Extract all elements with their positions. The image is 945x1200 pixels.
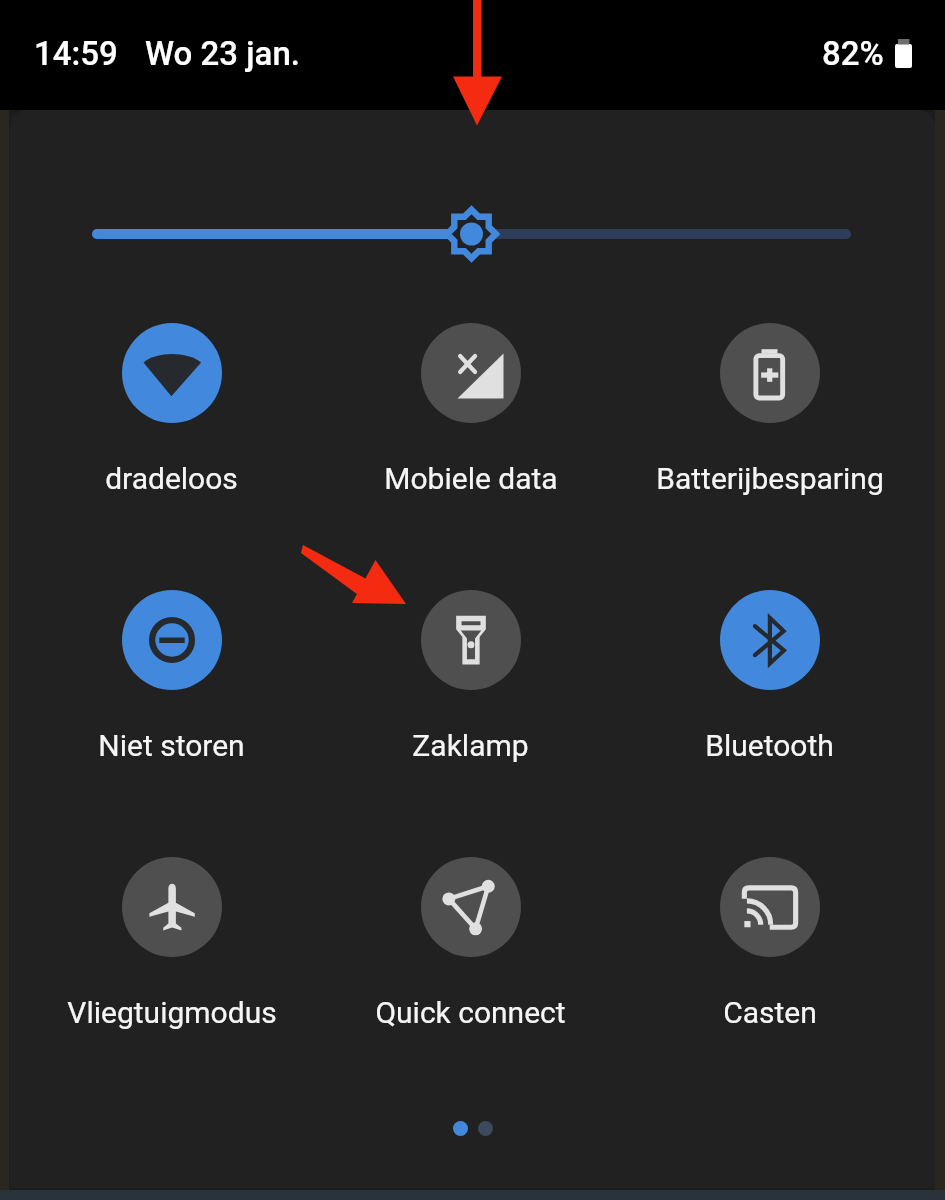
button[interactable]: Cast — [620, 857, 919, 1124]
button[interactable]: Mobile data — [321, 323, 620, 590]
staticText: Vliegtuigmodus — [67, 995, 277, 1030]
button[interactable]: Airplane mode — [22, 857, 321, 1124]
other: Cast — [720, 857, 820, 957]
other: Battery saver — [720, 323, 820, 423]
staticText: Bluetooth — [705, 728, 834, 763]
staticText: Niet storen — [98, 728, 245, 763]
button[interactable]: Battery saver — [620, 323, 919, 590]
other: Do not disturb — [122, 590, 222, 690]
button[interactable]: Bluetooth — [620, 590, 919, 857]
button[interactable]: Quick connect — [321, 857, 620, 1124]
staticText: Quick connect — [375, 995, 566, 1030]
button[interactable]: Brightness — [62, 194, 881, 274]
other: Airplane mode — [122, 857, 222, 957]
button[interactable]: Flashlight — [321, 590, 620, 857]
staticText: 14:59 — [34, 34, 118, 73]
staticText: Wo 23 jan. — [145, 34, 300, 73]
staticText: dradeloos — [105, 461, 238, 496]
button[interactable]: Do not disturb — [22, 590, 321, 857]
staticText: 82% — [822, 34, 884, 73]
staticText: Casten — [723, 995, 817, 1030]
staticText: Zaklamp — [412, 728, 529, 763]
staticText: Mobiele data — [384, 461, 558, 496]
other: Mobile data — [421, 323, 521, 423]
staticText: Batterijbesparing — [656, 461, 884, 496]
other: Quick connect — [421, 857, 521, 957]
other: Bluetooth — [720, 590, 820, 690]
button[interactable]: Wi-Fi — [22, 323, 321, 590]
other: Flashlight — [421, 590, 521, 690]
other: Wi-Fi — [122, 323, 222, 423]
